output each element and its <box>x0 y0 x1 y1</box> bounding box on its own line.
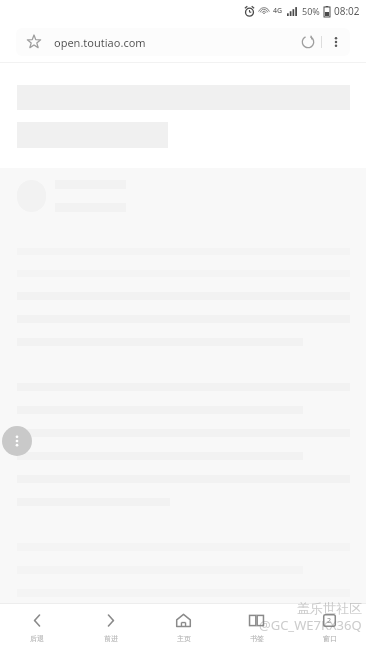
button[interactable]: Bookmark <box>24 32 44 52</box>
staticText: 前进 <box>104 634 118 643</box>
button[interactable]: Reload <box>295 29 321 55</box>
button[interactable]: 2 <box>293 604 366 650</box>
button[interactable]: Bookmark <box>16 28 350 56</box>
staticText: 2 <box>327 616 332 626</box>
staticText: 主页 <box>177 634 191 643</box>
button[interactable]: 书签 <box>220 604 293 650</box>
staticText: 盖乐世社区 <box>297 600 362 616</box>
staticText: @GC_WE7KX36Q <box>259 616 362 634</box>
button[interactable]: 前进 <box>74 604 147 650</box>
staticText: open.toutiao.com <box>54 35 295 50</box>
button[interactable]: Menu <box>322 28 350 56</box>
button[interactable]: 后退 <box>0 604 74 650</box>
staticText: 08:02 <box>334 4 360 18</box>
staticText: 4G <box>273 6 283 16</box>
staticText: 书签 <box>250 634 264 643</box>
staticText: 窗口 <box>323 634 337 643</box>
staticText: 50% <box>302 5 320 17</box>
button[interactable]: More options <box>2 426 32 456</box>
button[interactable]: 主页 <box>147 604 220 650</box>
staticText: 后退 <box>30 634 44 643</box>
